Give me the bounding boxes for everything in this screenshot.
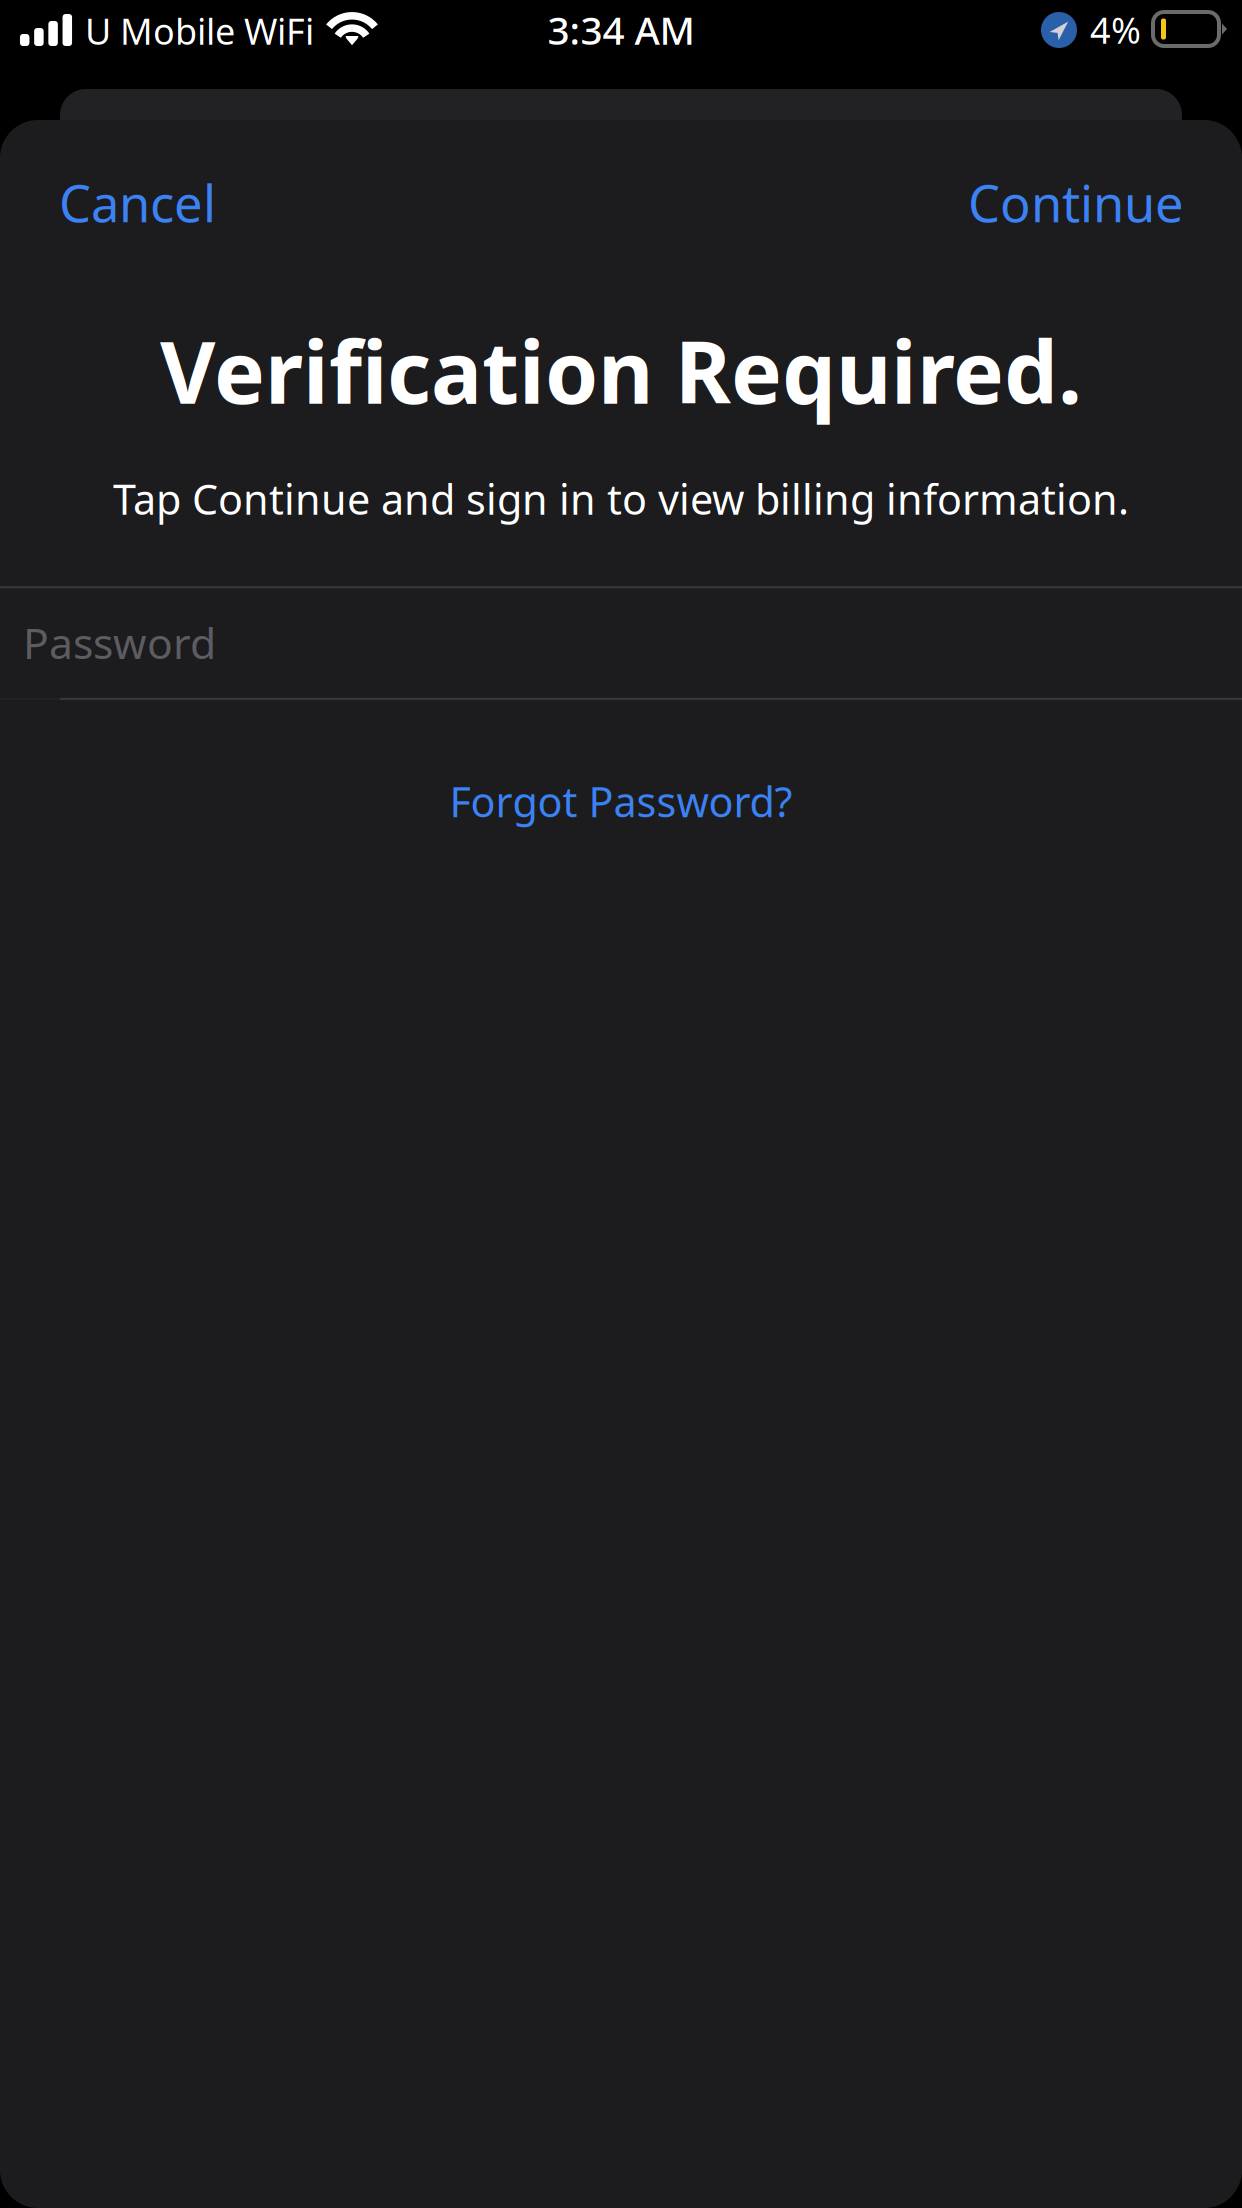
staticText: Forgot Password?: [449, 774, 792, 829]
button[interactable]: Password: [0, 588, 1242, 698]
staticText: Continue: [968, 169, 1184, 236]
staticText: U Mobile WiFi: [85, 7, 314, 55]
staticText: Tap Continue and sign in to view billing…: [113, 471, 1129, 526]
button[interactable]: Cancel: [0, 120, 256, 285]
staticText: Verification Required.: [160, 314, 1082, 427]
staticText: Cancel: [59, 169, 216, 236]
staticText: 4%: [1090, 6, 1141, 54]
button[interactable]: Continue: [928, 120, 1242, 285]
staticText: Password: [23, 614, 216, 671]
staticText: 3:34 AM: [547, 4, 694, 55]
button[interactable]: Forgot Password?: [0, 744, 1242, 859]
